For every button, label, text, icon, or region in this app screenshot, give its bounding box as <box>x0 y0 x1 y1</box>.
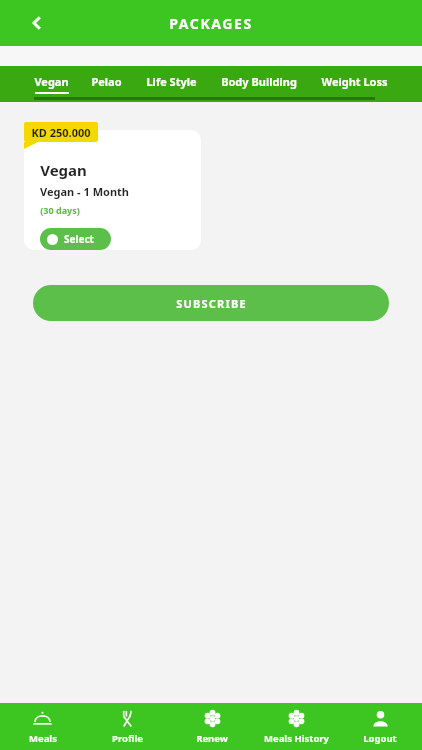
staticText: Meals History <box>264 732 329 745</box>
button[interactable]: Meals History <box>254 703 338 750</box>
button[interactable]: Body Building <box>221 66 297 89</box>
staticText: Weight Loss <box>321 74 388 89</box>
staticText: PACKAGES <box>169 14 253 33</box>
button[interactable]: Pelao <box>91 66 122 89</box>
button[interactable]: Life Style <box>146 66 197 89</box>
button[interactable]: Vegan <box>24 130 201 250</box>
staticText: Meals <box>29 732 57 745</box>
staticText: Select <box>64 232 94 246</box>
staticText: Vegan <box>40 160 87 180</box>
staticText: SUBSCRIBE <box>176 296 247 311</box>
staticText: KD 250.000 <box>31 125 91 140</box>
staticText: (30 days) <box>40 204 80 216</box>
button[interactable]: Logout <box>338 703 422 750</box>
staticText: Life Style <box>146 74 197 89</box>
button[interactable]: SUBSCRIBE <box>33 285 389 321</box>
staticText: Vegan <box>34 74 69 89</box>
button[interactable]: Profile <box>85 703 170 750</box>
button[interactable]: Renew <box>170 703 254 750</box>
staticText: Body Building <box>221 74 297 89</box>
staticText: Vegan - 1 Month <box>40 184 129 199</box>
staticText: Pelao <box>91 74 122 89</box>
staticText: Profile <box>112 732 143 745</box>
button[interactable]: Select <box>40 228 111 250</box>
button[interactable]: Back <box>18 4 56 42</box>
button[interactable]: Vegan <box>34 66 69 94</box>
staticText: Renew <box>196 732 228 745</box>
button[interactable]: Meals <box>0 703 85 750</box>
button[interactable]: Weight Loss <box>321 66 388 89</box>
staticText: Logout <box>363 732 397 745</box>
